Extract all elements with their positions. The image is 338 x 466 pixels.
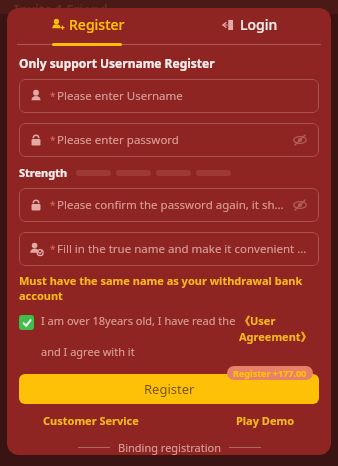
- button[interactable]: Toggle password visibility: [291, 131, 309, 149]
- staticText: *: [50, 242, 56, 256]
- staticText: Please enter Username: [57, 88, 309, 104]
- staticText: Binding registration: [118, 440, 221, 455]
- staticText: Fill in the true name and make it conven…: [57, 241, 309, 257]
- staticText: *: [50, 89, 56, 103]
- staticText: Only support Username Register: [19, 55, 215, 71]
- staticText: Must have the same name as your withdraw…: [19, 273, 319, 303]
- button[interactable]: *: [19, 232, 319, 266]
- staticText: Login: [240, 15, 278, 34]
- staticText: Please confirm the password again, it sh…: [57, 197, 287, 213]
- staticText: Register: [144, 380, 195, 398]
- staticText: 《User Agreement》: [239, 313, 319, 344]
- staticText: and I agree with it: [41, 344, 135, 359]
- button[interactable]: *: [19, 123, 319, 157]
- button[interactable]: *: [19, 188, 319, 222]
- button[interactable]: Register: [51, 15, 125, 34]
- staticText: Register +177.00: [233, 367, 307, 379]
- staticText: Invite 1 Friend: [14, 0, 108, 14]
- staticText: *: [50, 198, 56, 212]
- staticText: Please enter password: [57, 132, 287, 148]
- staticText: Strength: [19, 165, 68, 180]
- button[interactable]: Register: [19, 374, 319, 404]
- button[interactable]: I am over 18years old, I have read the: [19, 313, 319, 359]
- staticText: *: [50, 133, 56, 147]
- staticText: Customer Service: [43, 413, 139, 428]
- button[interactable]: Play Demo: [236, 413, 295, 428]
- staticText: Register: [69, 15, 125, 34]
- button[interactable]: *: [19, 79, 319, 113]
- button[interactable]: Toggle password visibility: [291, 196, 309, 214]
- button[interactable]: Login: [222, 15, 278, 34]
- staticText: Play Demo: [236, 413, 295, 428]
- button[interactable]: Customer Service: [43, 413, 139, 428]
- staticText: I am over 18years old, I have read the: [41, 313, 239, 328]
